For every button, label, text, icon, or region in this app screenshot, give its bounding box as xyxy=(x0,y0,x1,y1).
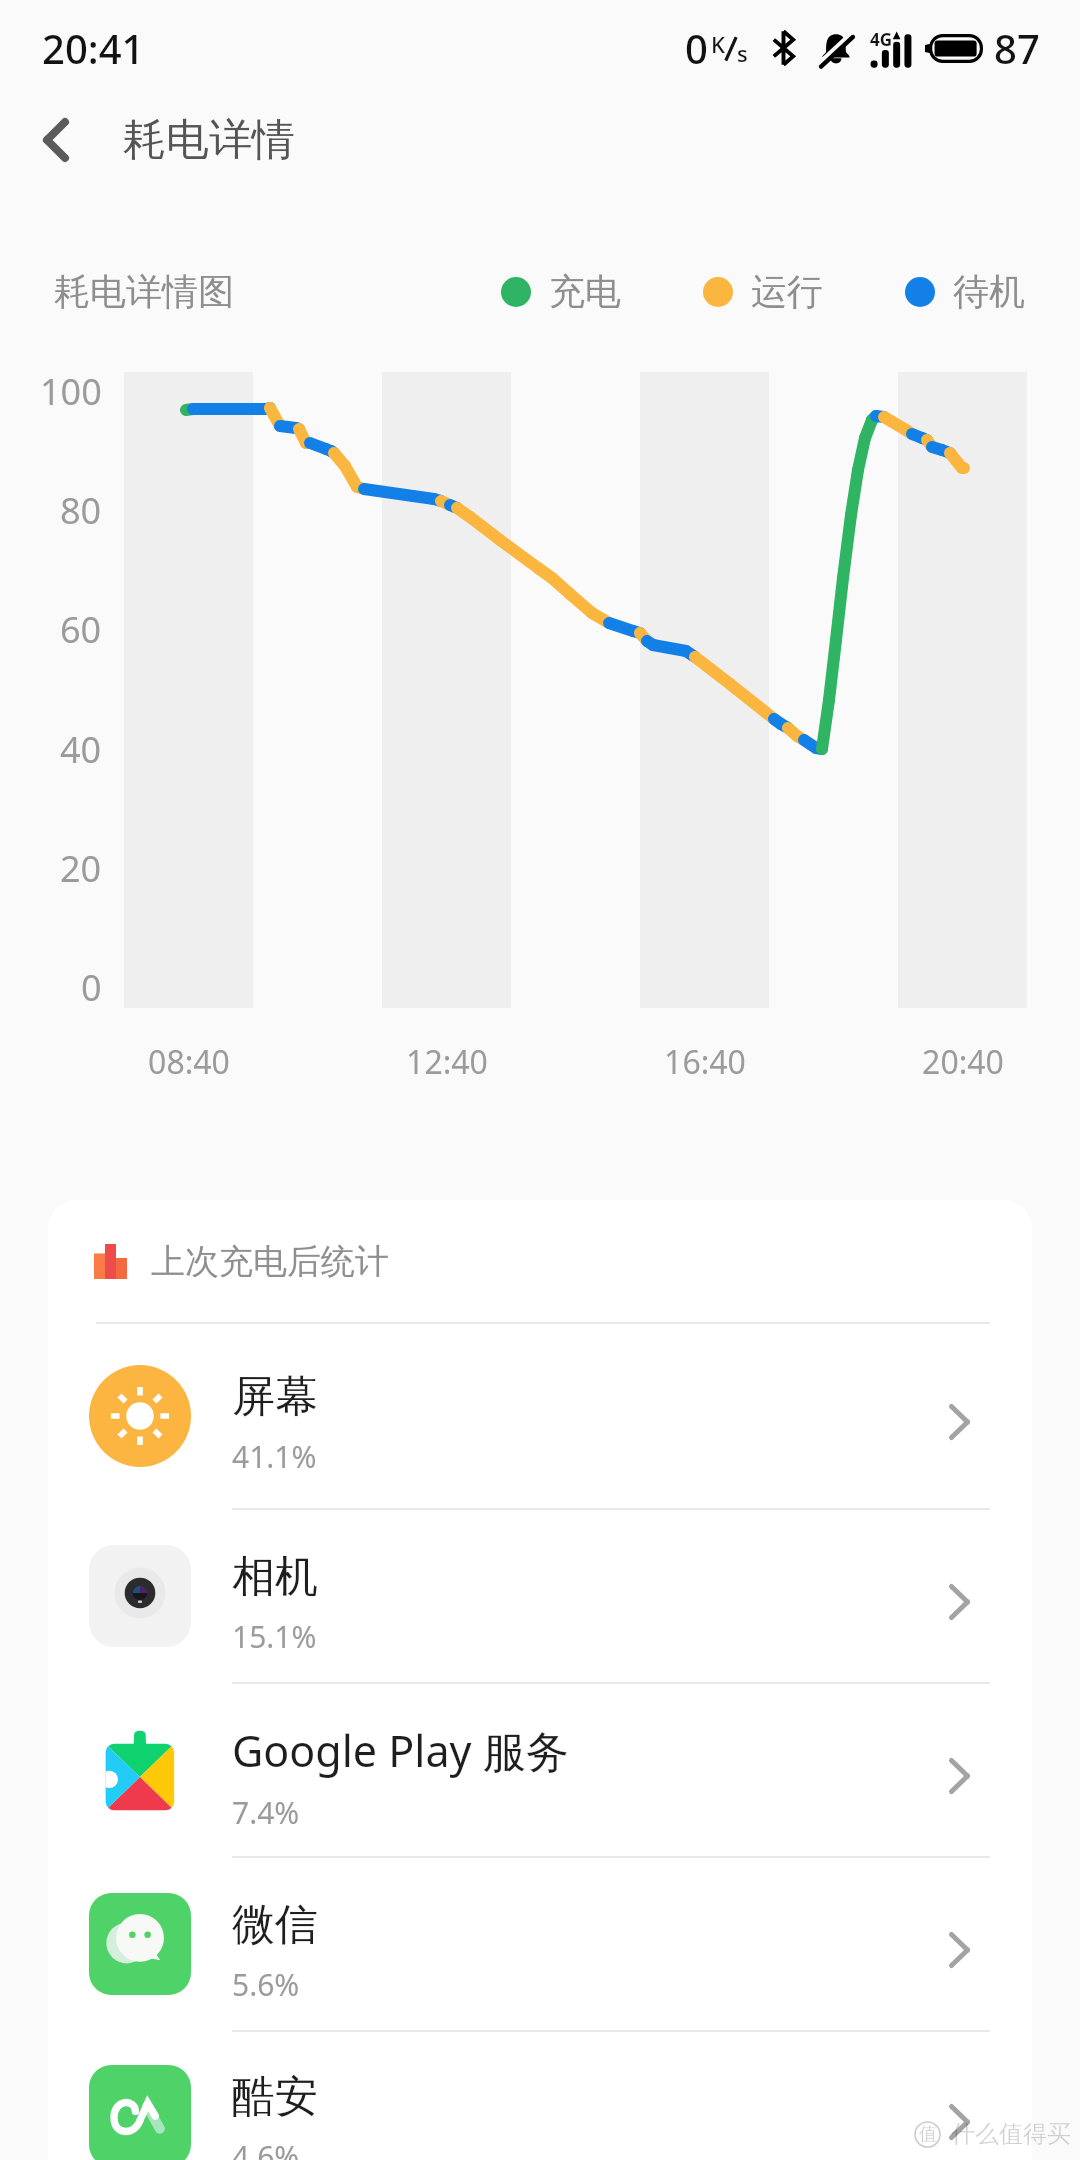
staticText: 屏幕 xyxy=(232,1370,318,1424)
staticText: 5.6% xyxy=(232,1964,300,2005)
button[interactable]: 酷安 xyxy=(48,2032,1032,2160)
staticText: 100 xyxy=(40,367,102,416)
staticText: 87 xyxy=(994,21,1040,75)
staticText: 值 xyxy=(919,2123,937,2146)
staticText: 60 xyxy=(60,605,102,654)
staticText: 7.4% xyxy=(232,1792,300,1833)
staticText: 20:40 xyxy=(922,1040,1004,1084)
staticText: 08:40 xyxy=(148,1040,230,1084)
staticText: 耗电详情 xyxy=(123,113,295,167)
staticText: 充电 xyxy=(549,269,621,314)
staticText: Google Play 服务 xyxy=(232,1721,569,1780)
staticText: 12:40 xyxy=(406,1040,488,1084)
staticText: s xyxy=(737,38,748,68)
staticText: 耗电详情图 xyxy=(54,269,234,314)
staticText: 酷安 xyxy=(232,2070,318,2124)
staticText: 上次充电后统计 xyxy=(151,1240,389,1283)
staticText: 40 xyxy=(60,725,102,774)
staticText: 20 xyxy=(60,844,102,893)
staticText: 待机 xyxy=(953,269,1025,314)
staticText: 0 xyxy=(685,21,708,75)
button[interactable]: Google Play 服务 xyxy=(48,1684,1032,1856)
staticText: 微信 xyxy=(232,1898,318,1952)
staticText: 相机 xyxy=(232,1550,318,1604)
button[interactable]: 相机 xyxy=(48,1510,1032,1682)
button[interactable]: Back xyxy=(14,98,98,182)
staticText: 运行 xyxy=(751,269,823,314)
staticText: 4G xyxy=(870,28,893,51)
staticText: 80 xyxy=(60,486,102,535)
button[interactable]: 微信 xyxy=(48,1858,1032,2030)
staticText: 0 xyxy=(81,963,102,1012)
staticText: 15.1% xyxy=(232,1616,317,1657)
staticText: 16:40 xyxy=(664,1040,746,1084)
staticText: 4.6% xyxy=(232,2136,300,2160)
staticText: 41.1% xyxy=(232,1436,317,1477)
staticText: 什么值得买 xyxy=(951,2119,1071,2149)
button[interactable]: 屏幕 xyxy=(48,1324,1032,1508)
staticText: 20:41 xyxy=(42,21,145,75)
staticText: K xyxy=(711,29,725,59)
